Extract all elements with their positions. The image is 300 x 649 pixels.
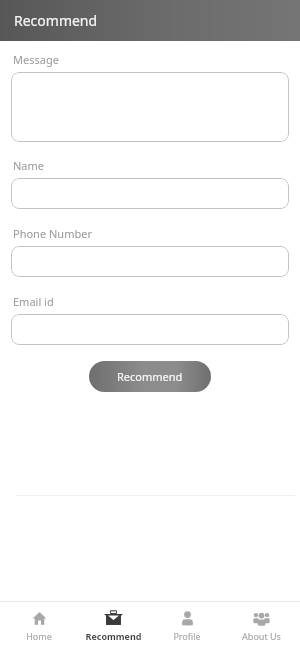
staticText: Recommend <box>14 11 98 30</box>
button[interactable]: Home <box>4 606 74 646</box>
button[interactable]: Recommend <box>89 361 211 392</box>
staticText: Home <box>26 630 52 642</box>
staticText: About Us <box>242 630 281 642</box>
button[interactable] <box>11 72 289 142</box>
button[interactable] <box>11 178 289 209</box>
button[interactable] <box>11 314 289 345</box>
staticText: Name <box>13 158 45 173</box>
staticText: Message <box>13 52 59 67</box>
staticText: Recommend <box>85 630 142 642</box>
staticText: Recommend <box>117 369 183 384</box>
staticText: Profile <box>173 630 201 642</box>
staticText: Email id <box>13 294 54 309</box>
button[interactable] <box>11 246 289 277</box>
button[interactable]: About Us <box>226 606 296 646</box>
button[interactable]: Recommend <box>78 606 148 646</box>
staticText: Phone Number <box>13 226 92 241</box>
button[interactable]: Profile <box>152 606 222 646</box>
